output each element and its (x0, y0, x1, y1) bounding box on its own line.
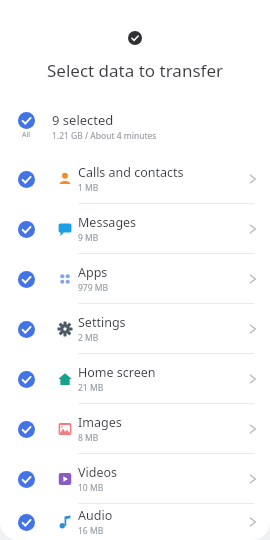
button[interactable]: Select Apps (11, 264, 41, 294)
staticText: 21 MB (78, 382, 104, 394)
staticText: 979 MB (78, 282, 109, 294)
button[interactable]: Select Apps (0, 254, 270, 303)
staticText: 9 MB (78, 232, 99, 244)
staticText: 1.21 GB / About 4 minutes (52, 130, 157, 142)
button[interactable]: Select Images (0, 404, 270, 453)
button[interactable]: Select Calls and contacts (11, 164, 41, 194)
button[interactable]: Select Settings (11, 314, 41, 344)
staticText: Home screen (78, 364, 156, 381)
staticText: 2 MB (78, 332, 99, 344)
staticText: 1 MB (78, 182, 99, 194)
button[interactable]: Select Calls and contacts (0, 154, 270, 203)
staticText: Calls and contacts (78, 164, 184, 181)
staticText: Apps (78, 264, 108, 281)
button[interactable]: Select Videos (0, 454, 270, 503)
button[interactable]: Select Home screen (0, 354, 270, 403)
button[interactable]: Select Messages (11, 214, 41, 244)
button[interactable]: All (0, 104, 270, 148)
staticText: Audio (78, 507, 113, 524)
button[interactable]: Select Videos (11, 464, 41, 494)
button[interactable]: Select Audio (11, 507, 41, 537)
staticText: 8 MB (78, 432, 99, 444)
staticText: 10 MB (78, 482, 104, 494)
staticText: Images (78, 414, 122, 431)
button[interactable]: Select Audio (0, 504, 270, 540)
staticText: Settings (78, 314, 126, 331)
staticText: Videos (78, 464, 118, 481)
staticText: Messages (78, 214, 137, 231)
staticText: All (22, 130, 31, 140)
button[interactable]: Select Messages (0, 204, 270, 253)
button[interactable]: Select Settings (0, 304, 270, 353)
button[interactable]: Select Home screen (11, 364, 41, 394)
staticText: Select data to transfer (0, 59, 270, 82)
staticText: 16 MB (78, 525, 104, 537)
staticText: 9 selected (52, 111, 114, 129)
button[interactable]: Select Images (11, 414, 41, 444)
